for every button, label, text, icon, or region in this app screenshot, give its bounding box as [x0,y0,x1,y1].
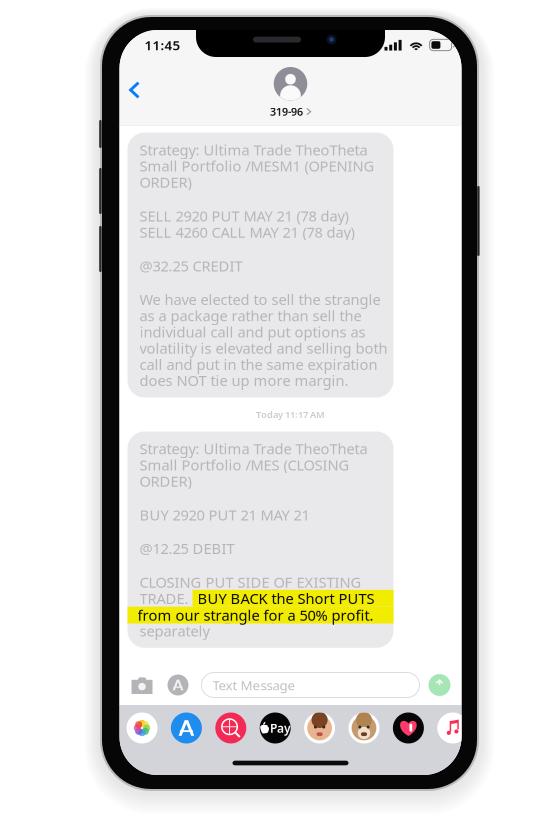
staticText: Strategy: Ultima Trade TheoTheta [139,439,367,458]
staticText: Pay [270,720,291,736]
staticText: volatility is elevated and selling both [139,338,387,358]
staticText: from our strangle for a 50% profit. [137,605,373,625]
button[interactable]: Memoji [304,712,335,743]
button[interactable]: Digital Touch [393,712,424,743]
staticText: separately [139,621,209,640]
staticText: @12.25 DEBIT [139,539,234,558]
staticText: BUY BACK the Short PUTS [197,589,374,608]
staticText: does NOT tie up more margin. [139,371,348,390]
staticText: TRADE. [139,589,188,608]
staticText: We have elected to sell the strangle [139,290,380,309]
staticText: individual call and put options as [139,322,365,342]
staticText: SELL 4260 CALL MAY 21 (78 day) [139,222,354,242]
staticText: BUY 2920 PUT 21 MAY 21 [139,505,309,524]
staticText: Small Portfolio /MES (CLOSING [139,455,349,475]
button[interactable]: App Store [171,712,202,743]
staticText: as a package rather than sell the [139,306,361,325]
button[interactable]: Images [215,712,246,743]
staticText: 11:45 [144,36,180,54]
staticText: ORDER) [139,172,191,192]
staticText: CLOSING PUT SIDE OF EXISTING [139,572,361,592]
staticText: SELL 2920 PUT MAY 21 (78 day) [139,206,348,226]
staticText: @32.25 CREDIT [139,256,242,275]
button[interactable]: Send [428,674,450,696]
button[interactable]: Music [437,712,468,743]
button[interactable]: Animoji [348,712,379,743]
staticText: Strategy: Ultima Trade TheoTheta [139,140,367,159]
staticText: ORDER) [139,471,191,491]
button[interactable]: Back [119,68,156,117]
staticText: Today 11:17 AM [256,408,325,421]
staticText: We will mange the put and call [139,605,350,624]
button[interactable]: App Store [167,674,188,695]
button[interactable]: Apple Pay [260,712,291,743]
staticText: call and put in the same expiration [139,354,377,374]
staticText: Small Portfolio /MESM1 (OPENING [139,156,374,176]
button[interactable]: Camera [131,675,152,694]
staticText: Text Message [212,676,295,694]
button[interactable]: Photos [126,712,157,743]
staticText: 319-96 [270,104,303,119]
